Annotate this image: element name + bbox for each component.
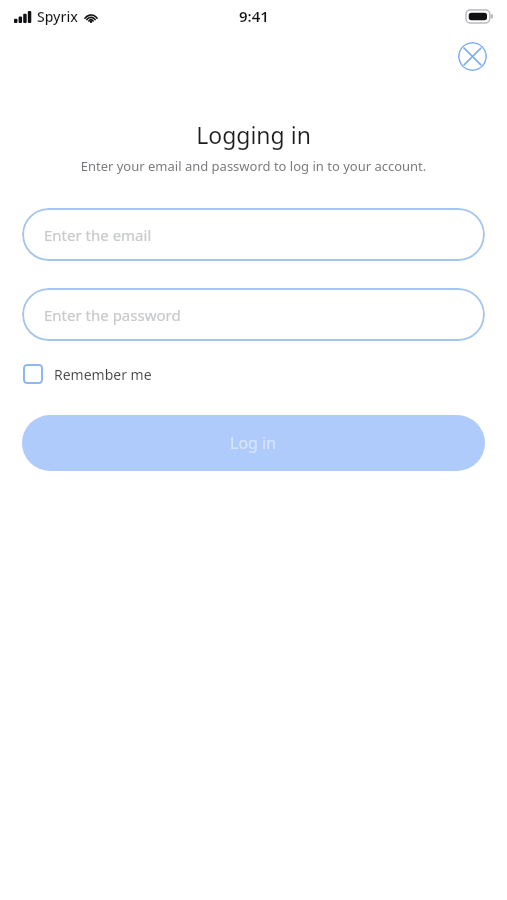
staticText: Logging in (0, 119, 507, 150)
button[interactable]: Enter the email (22, 208, 485, 261)
staticText: Enter the email (44, 225, 152, 245)
staticText: Log in (230, 432, 277, 454)
staticText: 9:41 (239, 6, 269, 26)
staticText: Remember me (54, 365, 152, 384)
button[interactable]: Close (458, 42, 487, 71)
staticText: Enter your email and password to log in … (20, 157, 487, 175)
button[interactable]: Log in (22, 415, 485, 471)
button[interactable]: Enter the password (22, 288, 485, 341)
staticText: Enter the password (44, 305, 181, 325)
button[interactable]: Remember me (22, 361, 153, 387)
staticText: Spyrix (37, 7, 78, 26)
